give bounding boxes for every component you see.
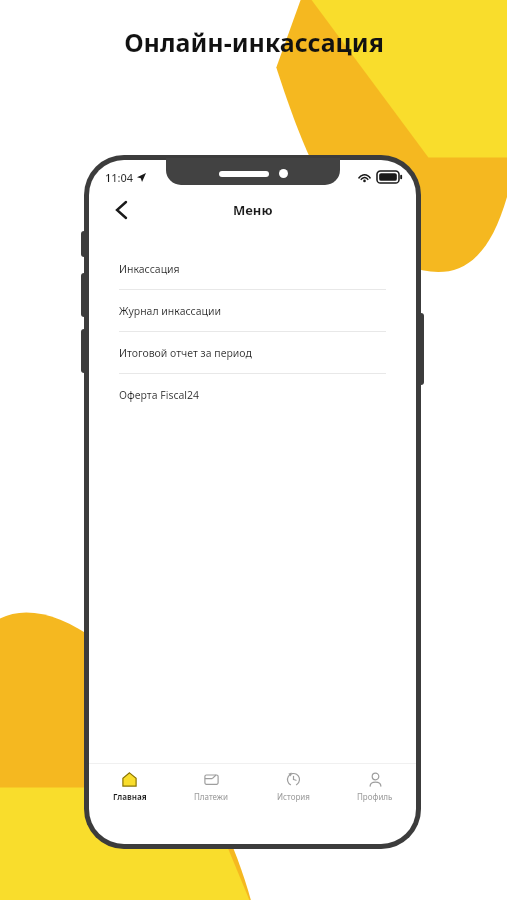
staticText: История [277, 791, 310, 802]
staticText: Меню [233, 201, 273, 219]
button[interactable]: Back [101, 190, 141, 230]
button[interactable]: Инкассация [89, 248, 416, 290]
staticText: 11:04 [105, 170, 134, 185]
staticText: Оферта Fiscal24 [119, 388, 200, 402]
button[interactable]: История [252, 768, 334, 806]
button[interactable]: Журнал инкассации [89, 290, 416, 332]
staticText: Главная [113, 791, 147, 802]
button[interactable]: Итоговой отчет за период [89, 332, 416, 374]
staticText: Профиль [357, 791, 393, 802]
button[interactable]: Оферта Fiscal24 [89, 374, 416, 415]
staticText: Онлайн-инкассация [124, 25, 384, 59]
staticText: Инкассация [119, 262, 180, 276]
button[interactable]: Главная [89, 768, 170, 806]
staticText: Платежи [194, 791, 228, 802]
staticText: Журнал инкассации [119, 304, 222, 318]
button[interactable]: Платежи [170, 768, 252, 806]
button[interactable]: Профиль [334, 768, 416, 806]
staticText: Итоговой отчет за период [119, 346, 252, 360]
